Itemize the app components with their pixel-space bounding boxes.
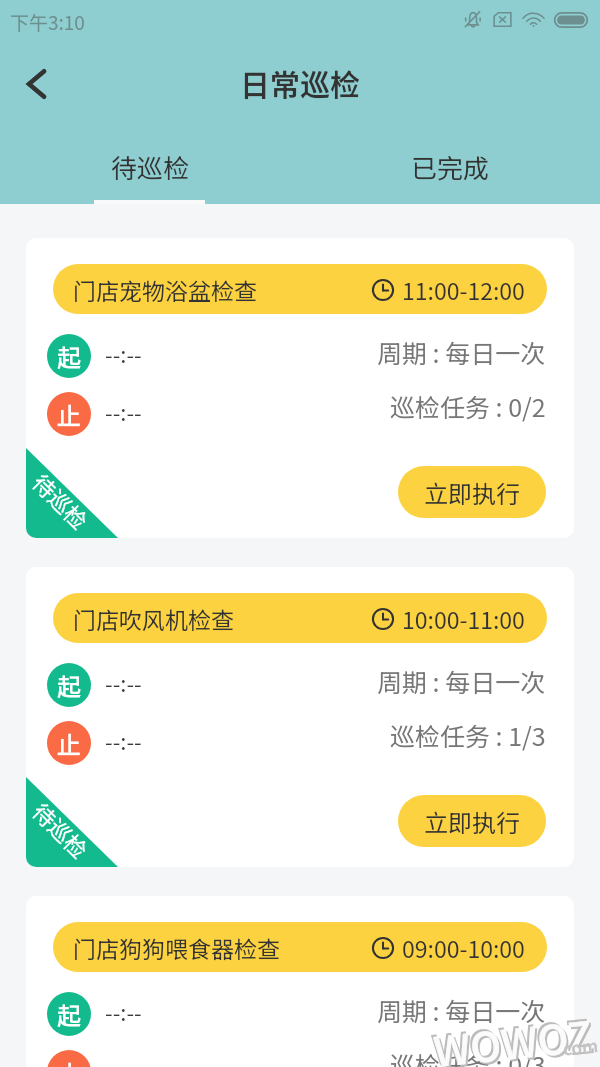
staticText: 立即执行 [424, 804, 520, 839]
staticText: .com [557, 1032, 599, 1061]
staticText: 起 [57, 668, 81, 703]
staticText: WOWOZ [430, 1003, 596, 1067]
button[interactable]: 立即执行 [398, 466, 546, 518]
staticText: 已完成 [411, 148, 490, 186]
staticText: 待巡检 [26, 795, 96, 865]
staticText: 巡检任务 : 0/2 [390, 388, 546, 424]
staticText: 立即执行 [424, 475, 520, 510]
staticText: --:-- [105, 995, 142, 1027]
staticText: 10:00-11:00 [402, 602, 525, 635]
staticText: 起 [57, 339, 81, 374]
button[interactable]: 待巡检 [26, 238, 574, 538]
staticText: --:-- [105, 395, 142, 427]
staticText: 巡检任务 : 0/3 [390, 1046, 546, 1067]
staticText: 起 [57, 997, 81, 1032]
staticText: 止 [57, 726, 81, 761]
staticText: 巡检任务 : 1/3 [390, 717, 546, 753]
staticText: 11:00-12:00 [402, 273, 525, 306]
staticText: 下午3:10 [10, 8, 85, 36]
staticText: --:-- [105, 666, 142, 698]
staticText: --:-- [105, 724, 142, 756]
staticText: --:-- [105, 337, 142, 369]
staticText: 门店吹风机检查 [73, 602, 234, 635]
staticText: 止 [57, 397, 81, 432]
button[interactable]: 返回 [4, 55, 58, 109]
staticText: 待巡检 [26, 466, 96, 536]
staticText: WOWOZ [428, 1001, 594, 1067]
button[interactable]: 已完成 [300, 122, 600, 204]
staticText: 09:00-10:00 [402, 931, 525, 964]
staticText: 待巡检 [111, 148, 190, 186]
button[interactable]: 待巡检 [26, 567, 574, 867]
staticText: 周期 : 每日一次 [377, 663, 546, 699]
staticText: 止 [57, 1055, 81, 1067]
staticText: 门店宠物浴盆检查 [73, 273, 257, 306]
staticText: 周期 : 每日一次 [377, 992, 546, 1028]
staticText: WOWOZ [432, 1005, 598, 1067]
button[interactable]: 待巡检 [26, 896, 574, 1067]
button[interactable]: 立即执行 [398, 795, 546, 847]
button[interactable]: 待巡检 [0, 122, 300, 204]
staticText: 门店狗狗喂食器检查 [73, 931, 280, 964]
staticText: 周期 : 每日一次 [377, 334, 546, 370]
staticText: 日常巡检 [240, 61, 360, 104]
